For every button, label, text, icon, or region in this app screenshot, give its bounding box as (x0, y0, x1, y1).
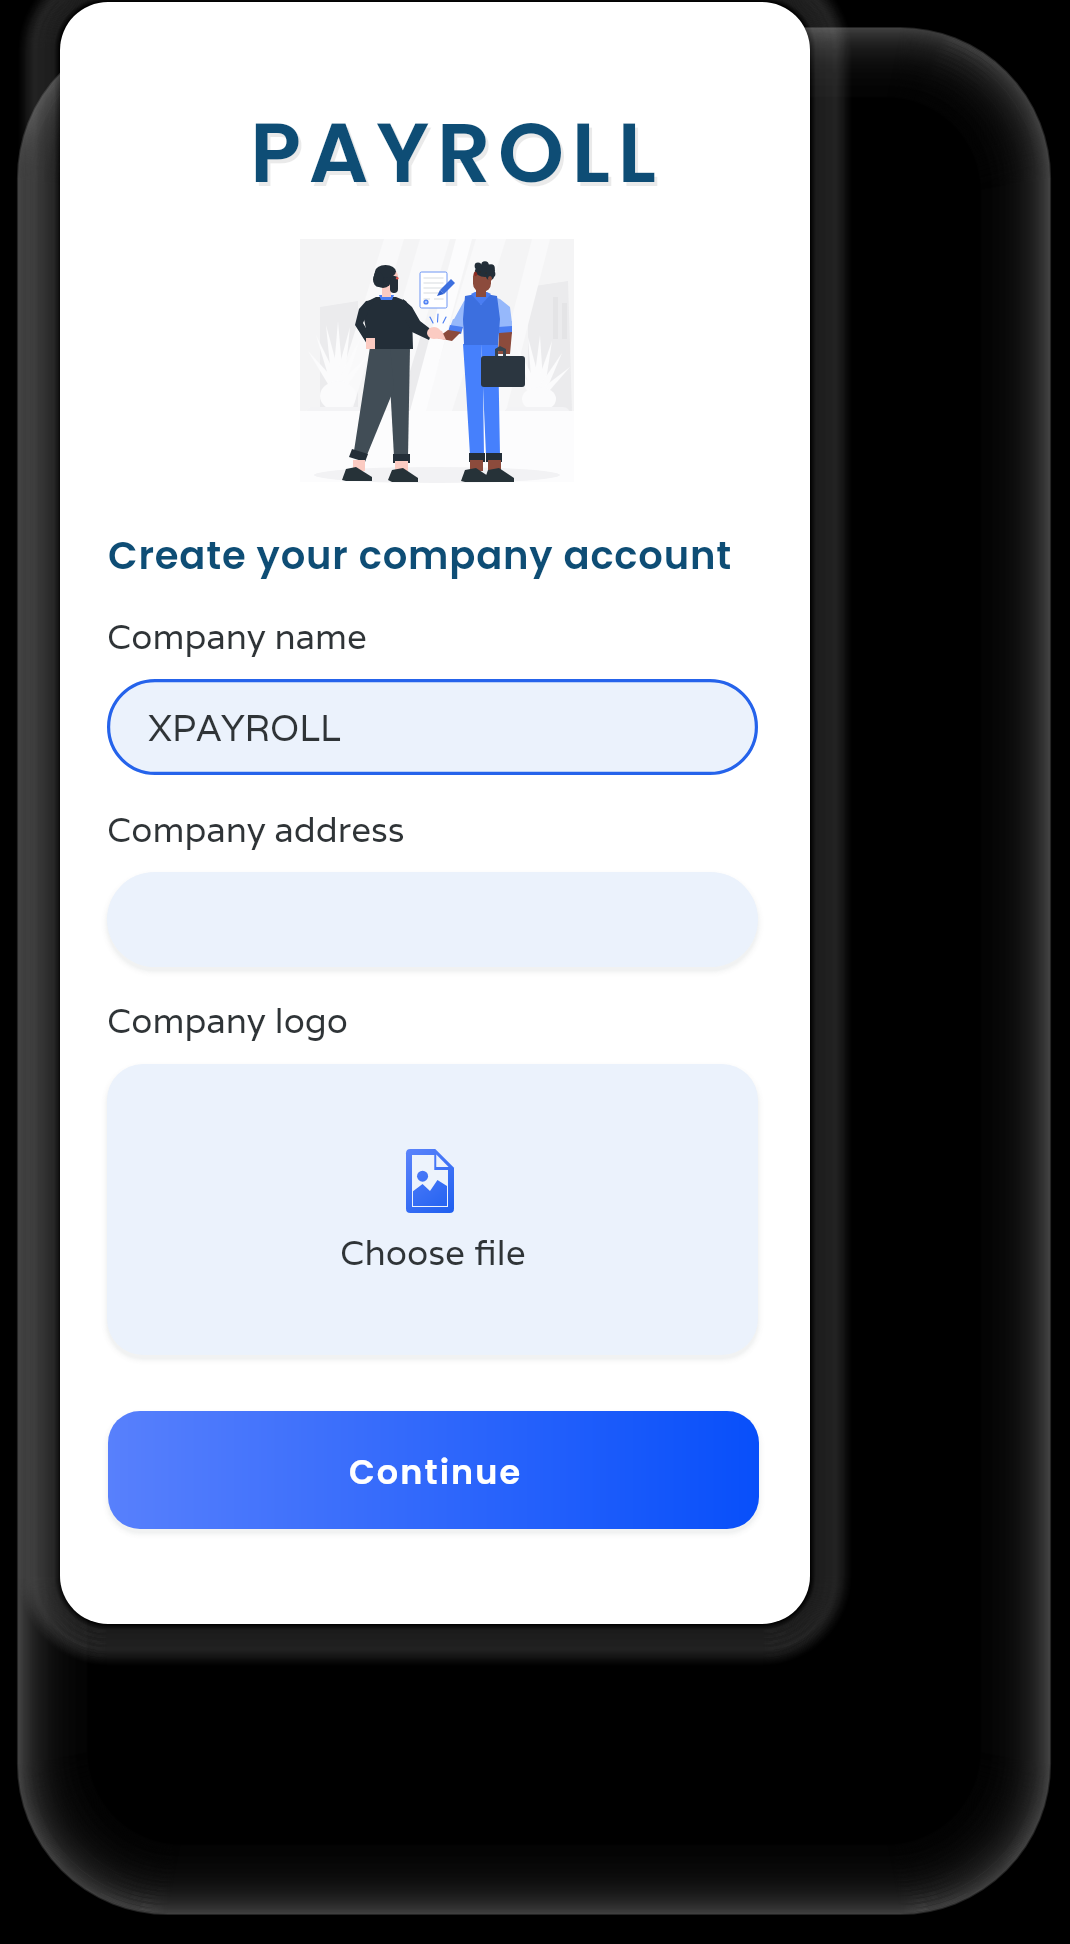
button[interactable]: Continue (108, 1411, 759, 1529)
button[interactable]: XPAYROLL (107, 679, 758, 775)
staticText: Continue (349, 1449, 523, 1496)
staticText: XPAYROLL (148, 704, 341, 751)
staticText: PAYROLL (253, 98, 667, 216)
staticText: Create your company account (108, 529, 733, 583)
staticText: Company address (107, 807, 405, 852)
staticText: Choose file (340, 1229, 526, 1274)
staticText: Company logo (107, 998, 348, 1043)
button[interactable]: Choose file (107, 1064, 758, 1355)
staticText: PAYROLL (250, 94, 664, 212)
staticText: Company name (107, 614, 367, 659)
other: Choose file (406, 1149, 454, 1213)
